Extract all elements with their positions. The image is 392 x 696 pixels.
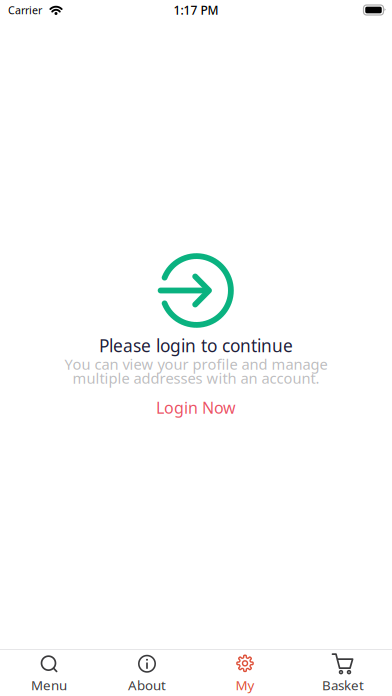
staticText: multiple addresses with an account.	[72, 368, 319, 388]
button[interactable]: Menu	[0, 650, 98, 696]
staticText: 1:17 PM	[173, 2, 218, 18]
staticText: Please login to continue	[99, 334, 293, 357]
staticText: You can view your profile and manage	[64, 354, 327, 374]
button[interactable]: Login Now	[142, 394, 250, 421]
staticText: Basket	[322, 676, 364, 694]
button[interactable]: About	[98, 650, 196, 696]
staticText: Menu	[31, 676, 67, 694]
button[interactable]: Basket	[294, 650, 392, 696]
staticText: My	[235, 676, 254, 694]
staticText: Login Now	[156, 397, 236, 418]
staticText: About	[128, 676, 166, 694]
staticText: Carrier	[8, 3, 42, 17]
button[interactable]: My	[196, 650, 294, 696]
